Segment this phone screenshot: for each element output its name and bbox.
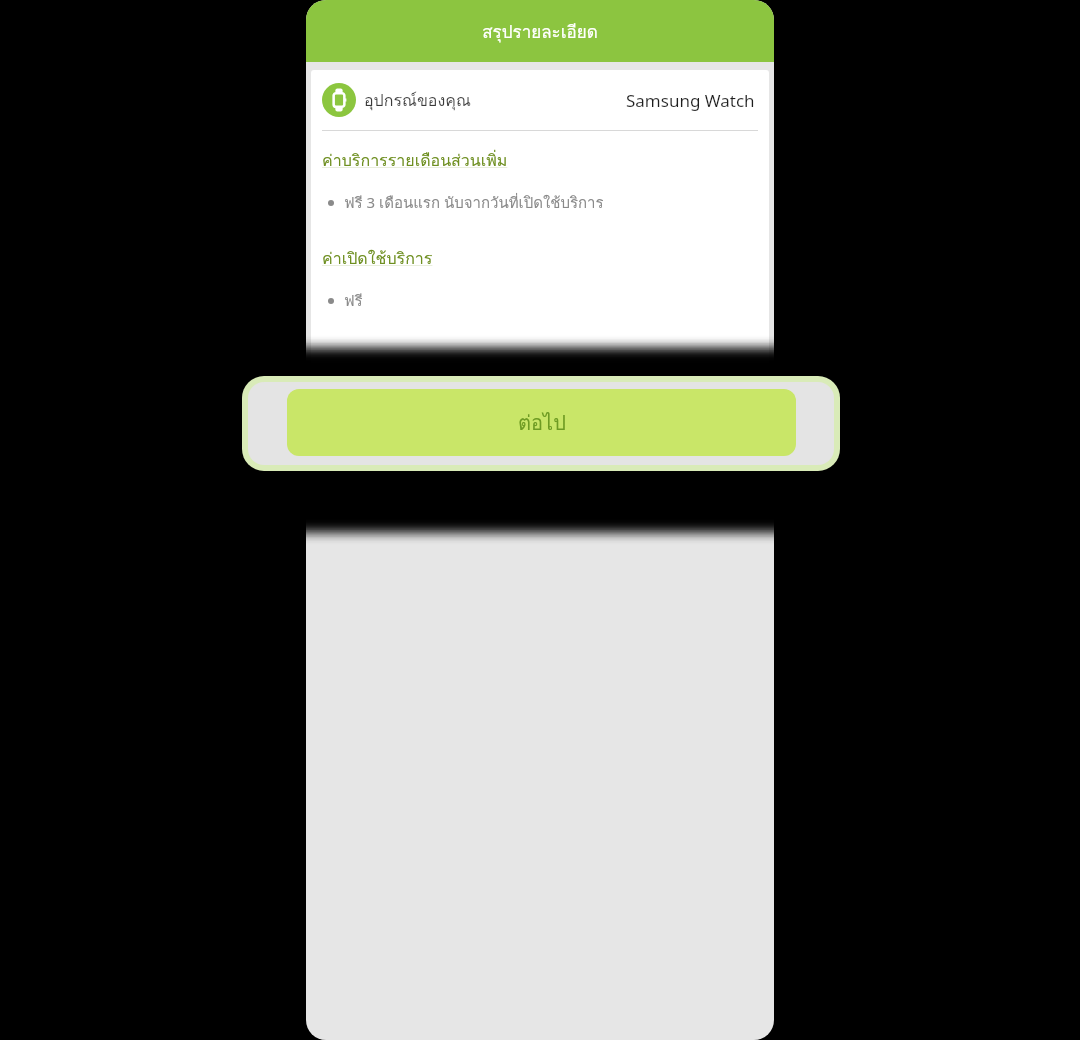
staticText: Samsung Watch bbox=[626, 89, 755, 112]
button[interactable]: อุปกรณ์ของคุณ bbox=[311, 70, 769, 130]
staticText: ค่าบริการรายเดือนส่วนเพิ่ม bbox=[322, 148, 508, 173]
staticText: อุปกรณ์ของคุณ bbox=[364, 88, 471, 113]
staticText: ต่อไป bbox=[518, 407, 566, 439]
staticText: ฟรี 3 เดือนแรก นับจากวันที่เปิดใช้บริการ bbox=[344, 191, 604, 215]
button[interactable]: ต่อไป bbox=[287, 389, 796, 456]
staticText: ฟรี bbox=[344, 289, 363, 313]
staticText: สรุปรายละเอียด bbox=[482, 18, 598, 45]
staticText: ค่าเปิดใช้บริการ bbox=[322, 246, 433, 271]
